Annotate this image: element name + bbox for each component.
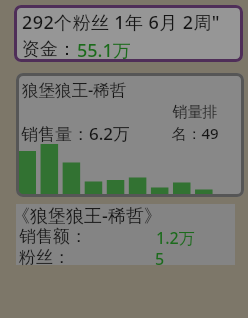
staticText: 《狼堡狼王-稀哲》 <box>12 203 162 228</box>
staticText: 资金： <box>22 38 76 61</box>
button[interactable]: 《狼堡狼王-稀哲》 <box>16 204 235 265</box>
staticText: 销售额： <box>19 226 87 247</box>
staticText: 狼堡狼王-稀哲 <box>22 78 127 101</box>
button[interactable]: 狼堡狼王-稀哲 <box>16 73 244 197</box>
staticText: 292个粉丝 1年 6月 2周" <box>22 10 220 35</box>
button[interactable]: 292个粉丝 1年 6月 2周" <box>14 5 243 62</box>
staticText: 5 <box>155 248 165 270</box>
staticText: 粉丝： <box>19 247 70 268</box>
staticText: 销售量：6.2万 <box>21 122 131 145</box>
staticText: 销量排 名：49 <box>163 103 227 143</box>
staticText: 55.1万 <box>77 38 131 63</box>
staticText: 1.2万 <box>156 227 195 249</box>
